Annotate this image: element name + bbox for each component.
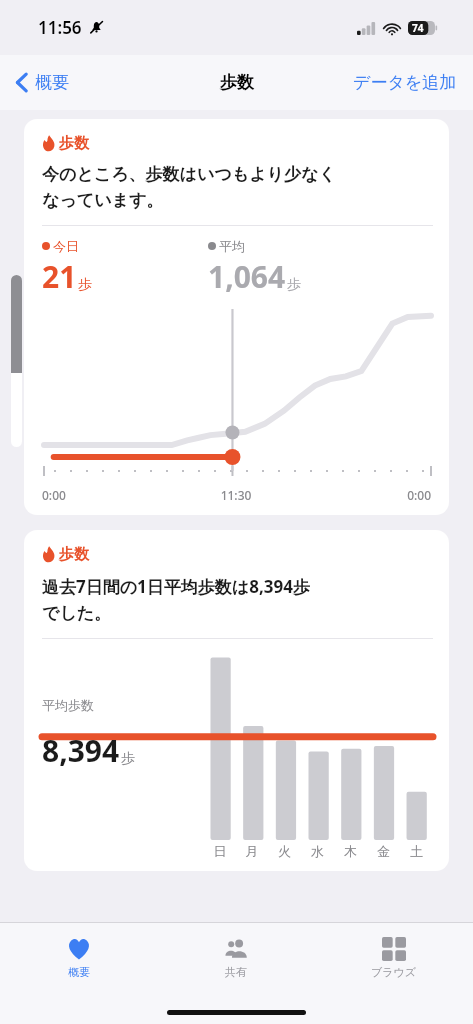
staticText: 8,394 bbox=[42, 730, 120, 771]
staticText: 歩数 bbox=[59, 545, 89, 564]
staticText: 11:30 bbox=[171, 487, 301, 503]
staticText: 歩数 bbox=[59, 134, 89, 153]
button[interactable]: 歩数 bbox=[24, 530, 449, 871]
staticText: 平均歩数 bbox=[42, 697, 94, 713]
staticText: 日 bbox=[204, 843, 236, 859]
staticText: 火 bbox=[268, 843, 301, 859]
staticText: 74 bbox=[412, 21, 424, 35]
staticText: 平均 bbox=[219, 238, 245, 254]
staticText: 過去7日間の1日平均歩数は8,394歩 でした。 bbox=[42, 575, 310, 624]
staticText: 木 bbox=[334, 843, 367, 859]
button[interactable]: 概要 bbox=[0, 932, 157, 983]
button[interactable]: 共有 bbox=[157, 932, 315, 983]
staticText: 土 bbox=[400, 843, 433, 859]
staticText: 今のところ、歩数はいつもより少なく なっています。 bbox=[42, 164, 336, 211]
staticText: 共有 bbox=[225, 965, 247, 979]
staticText: 概要 bbox=[35, 72, 69, 93]
staticText: 金 bbox=[367, 843, 400, 859]
staticText: 歩 bbox=[121, 750, 135, 768]
staticText: 歩数 bbox=[220, 72, 254, 93]
staticText: 概要 bbox=[68, 965, 90, 979]
button[interactable]: 歩数 bbox=[24, 119, 449, 515]
staticText: 月 bbox=[236, 843, 268, 859]
staticText: 水 bbox=[301, 843, 334, 859]
button[interactable]: データを追加 bbox=[349, 64, 461, 101]
button[interactable]: ブラウズ bbox=[315, 932, 473, 983]
staticText: 歩 bbox=[78, 276, 92, 294]
staticText: 1,064 bbox=[208, 256, 286, 297]
staticText: 歩 bbox=[287, 276, 301, 294]
staticText: 21 bbox=[42, 256, 77, 297]
staticText: 今日 bbox=[53, 238, 79, 254]
button[interactable]: 概要 bbox=[10, 66, 75, 99]
staticText: データを追加 bbox=[353, 72, 457, 93]
staticText: ブラウズ bbox=[371, 965, 417, 979]
staticText: 11:56 bbox=[38, 16, 82, 39]
staticText: 0:00 bbox=[42, 487, 171, 503]
staticText: 0:00 bbox=[301, 487, 431, 503]
